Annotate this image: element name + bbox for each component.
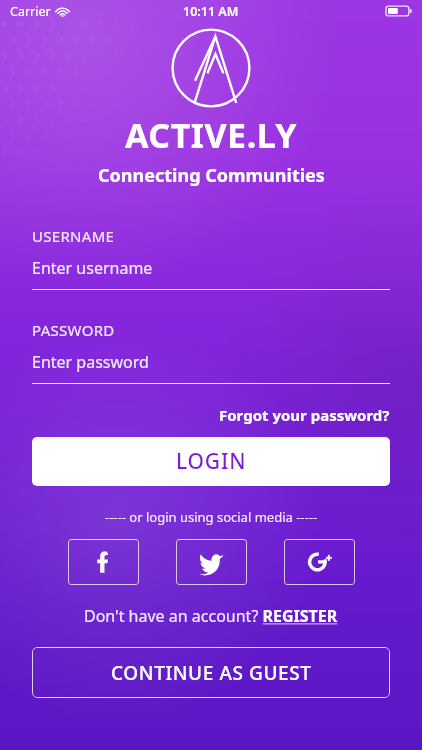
staticText: Connecting Communities [98, 163, 325, 188]
staticText: LOGIN [176, 447, 247, 476]
button[interactable]: Forgot your password? [219, 405, 390, 425]
staticText: 10:11 AM [183, 3, 239, 20]
button[interactable]: Sign in with Google Plus [284, 539, 355, 585]
staticText: Forgot your password? [219, 405, 390, 425]
button[interactable]: Enter password [32, 351, 390, 373]
staticText: ACTIVE.LY [125, 112, 297, 158]
button[interactable]: Don't have an account? REGISTER [84, 605, 338, 627]
button[interactable]: LOGIN [32, 437, 390, 486]
button[interactable]: Enter username [32, 257, 390, 279]
button[interactable]: Sign in with Twitter [176, 539, 247, 585]
staticText: Don't have an account? REGISTER [84, 605, 338, 627]
staticText: ----- or login using social media ----- [105, 508, 318, 526]
staticText: CONTINUE AS GUEST [111, 660, 312, 686]
staticText: USERNAME [32, 226, 115, 246]
staticText: Enter password [32, 351, 149, 373]
button[interactable]: CONTINUE AS GUEST [32, 647, 390, 698]
staticText: Carrier [10, 3, 51, 20]
staticText: Enter username [32, 257, 153, 279]
staticText: PASSWORD [32, 320, 115, 340]
button[interactable]: Sign in with Facebook [68, 539, 139, 585]
